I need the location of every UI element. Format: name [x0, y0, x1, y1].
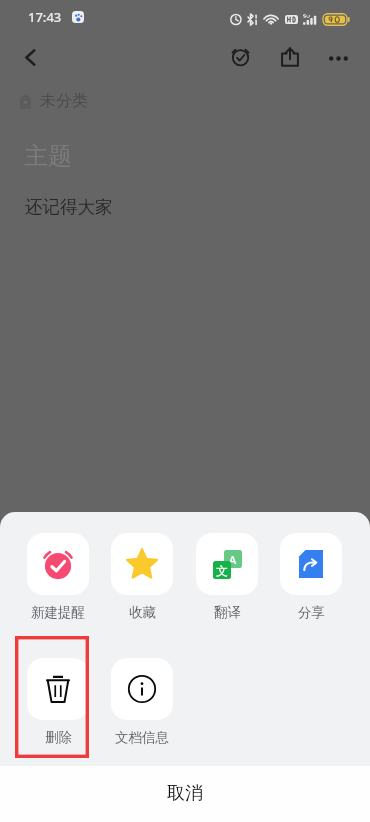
button[interactable]: 分享 [280, 533, 342, 621]
staticText: 17:43 [28, 8, 62, 26]
staticText: 未分类 [40, 91, 88, 111]
staticText: 文 [216, 563, 228, 578]
staticText: 取消 [167, 782, 203, 805]
button[interactable]: A [196, 533, 258, 621]
button[interactable]: 收藏 [111, 533, 173, 621]
staticText: 还记得大家 [25, 196, 113, 218]
button[interactable]: 删除 [27, 658, 89, 746]
staticText: 主题 [24, 141, 72, 171]
staticText: 翻译 [214, 604, 241, 621]
button[interactable]: Share [268, 35, 312, 79]
staticText: A [229, 552, 237, 567]
staticText: 文档信息 [115, 729, 169, 746]
button[interactable]: Reminder [218, 34, 262, 78]
staticText: 新建提醒 [31, 604, 85, 621]
button[interactable]: 新建提醒 [27, 533, 89, 621]
staticText: 删除 [45, 729, 72, 746]
button[interactable]: More options [316, 36, 360, 80]
staticText: 分享 [298, 604, 325, 621]
button[interactable]: 文档信息 [111, 658, 173, 746]
button[interactable]: 取消 [0, 766, 370, 822]
button[interactable]: Back [9, 36, 52, 79]
staticText: 收藏 [129, 604, 156, 621]
